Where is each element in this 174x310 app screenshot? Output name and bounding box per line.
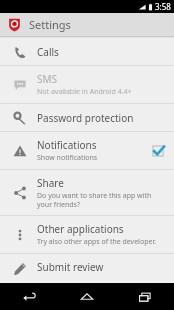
staticText: Do you want to share this app with your … [37,191,168,209]
button[interactable]: Share [0,170,174,215]
button[interactable]: Show notifications toggle [148,141,168,161]
button[interactable]: Home [58,283,116,310]
staticText: Other applications [37,222,124,236]
staticText: Try also other apps of the developer. [37,237,157,247]
staticText: Share [37,176,64,190]
staticText: 3:58 [155,1,171,12]
button[interactable]: Recent apps [116,283,174,310]
staticText: Password protection [37,111,134,125]
staticText: SMS [37,72,58,86]
button[interactable]: SMS [0,66,174,103]
button[interactable]: Back [0,283,58,310]
staticText: Settings [29,17,71,32]
staticText: Not available in Android 4.4+ [37,87,132,97]
staticText: Submit review [37,260,104,274]
button[interactable]: Calls [0,38,174,65]
button[interactable]: Notifications [0,132,174,169]
staticText: Show notifications [37,153,98,163]
staticText: Calls [37,45,59,59]
button[interactable]: Submit review [0,254,174,283]
staticText: Notifications [37,138,97,152]
button[interactable]: Password protection [0,104,174,131]
button[interactable]: Other applications [0,216,174,253]
